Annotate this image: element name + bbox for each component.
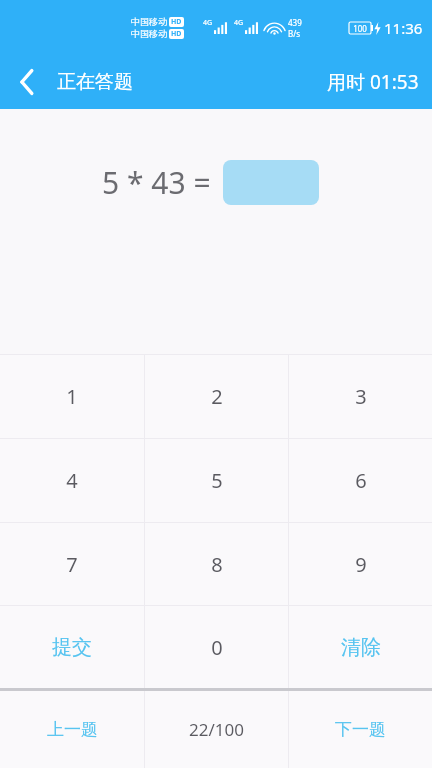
staticText: 4G: [203, 18, 213, 28]
button[interactable]: 提交: [0, 606, 144, 688]
button[interactable]: 清除: [289, 606, 432, 688]
staticText: 正在答题: [57, 70, 133, 94]
button[interactable]: 22/100: [145, 691, 288, 768]
staticText: 清除: [341, 635, 381, 660]
staticText: B/s: [288, 28, 301, 39]
staticText: 9: [355, 551, 367, 578]
staticText: 下一题: [335, 719, 386, 740]
button[interactable]: 1: [0, 355, 144, 438]
button[interactable]: 8: [145, 523, 288, 605]
staticText: HD: [171, 17, 182, 27]
staticText: 11:36: [384, 18, 423, 38]
staticText: 6: [355, 467, 367, 494]
button[interactable]: 4: [0, 439, 144, 522]
button[interactable]: 6: [289, 439, 432, 522]
staticText: 439: [288, 17, 302, 28]
staticText: 3: [355, 383, 367, 410]
button[interactable]: [223, 160, 319, 205]
button[interactable]: 上一题: [0, 691, 144, 768]
staticText: 7: [66, 551, 78, 578]
staticText: 中国移动: [131, 28, 167, 39]
staticText: 22/100: [189, 718, 244, 741]
staticText: 上一题: [47, 719, 98, 740]
staticText: 2: [211, 383, 223, 410]
staticText: 5: [211, 467, 223, 494]
staticText: 5 * 43 =: [102, 162, 211, 203]
staticText: 提交: [52, 635, 92, 660]
staticText: 8: [211, 551, 223, 578]
button[interactable]: 0: [145, 606, 288, 688]
button[interactable]: 3: [289, 355, 432, 438]
button[interactable]: 7: [0, 523, 144, 605]
staticText: 0: [211, 634, 223, 661]
staticText: 用时 01:53: [327, 69, 419, 95]
staticText: 4G: [234, 18, 244, 28]
button[interactable]: 9: [289, 523, 432, 605]
button[interactable]: 2: [145, 355, 288, 438]
button[interactable]: Back: [0, 55, 54, 109]
staticText: 1: [66, 383, 78, 410]
staticText: 4: [66, 467, 78, 494]
staticText: 中国移动: [131, 16, 167, 27]
staticText: HD: [171, 29, 182, 39]
button[interactable]: 5: [145, 439, 288, 522]
staticText: 100: [353, 23, 367, 34]
button[interactable]: 下一题: [289, 691, 432, 768]
